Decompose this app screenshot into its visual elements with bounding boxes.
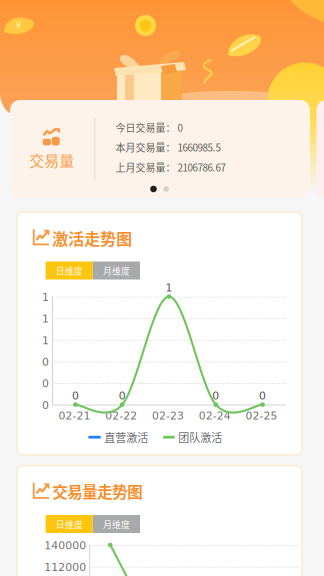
staticText: 02-23 — [152, 410, 184, 422]
staticText: 02-25 — [246, 410, 278, 422]
staticText: ¥ — [15, 19, 22, 31]
staticText: 上月交易量： 2106786.67 — [116, 160, 226, 174]
staticText: 02-21 — [58, 410, 90, 422]
staticText: 1 — [42, 312, 49, 325]
button[interactable] — [316, 100, 324, 198]
staticText: 0 — [42, 377, 49, 390]
staticText: 02-24 — [199, 410, 231, 422]
staticText: 140000 — [44, 539, 86, 552]
staticText: 1 — [165, 281, 172, 294]
button[interactable]: 月维度 — [93, 261, 140, 279]
staticText: 0 — [212, 389, 219, 402]
staticText: 月维度 — [103, 517, 130, 530]
button[interactable]: 日维度 — [46, 261, 93, 279]
staticText: 0 — [42, 356, 49, 368]
button[interactable]: 交易量 — [10, 100, 310, 198]
staticText: 团队激活 — [178, 429, 222, 445]
staticText: 02-22 — [105, 410, 137, 422]
staticText: 0 — [42, 399, 49, 411]
staticText: 今日交易量： 0 — [116, 120, 183, 135]
staticText: 本月交易量： 1660985.5 — [116, 140, 221, 154]
button[interactable]: 月维度 — [93, 515, 140, 533]
staticText: 0 — [72, 389, 79, 402]
staticText: 日维度 — [56, 264, 83, 277]
staticText: 1 — [42, 291, 49, 303]
staticText: 直营激活 — [104, 429, 148, 445]
staticText: 0 — [259, 389, 266, 402]
button[interactable]: 日维度 — [46, 515, 93, 533]
staticText: 0 — [119, 389, 126, 402]
staticText: 交易量 — [29, 149, 74, 171]
staticText: 日维度 — [56, 517, 83, 530]
staticText: 交易量走势图 — [52, 480, 142, 502]
staticText: 月维度 — [103, 264, 130, 277]
staticText: 112000 — [44, 561, 86, 574]
staticText: 1 — [42, 334, 49, 347]
staticText: 激活走势图 — [52, 227, 132, 250]
